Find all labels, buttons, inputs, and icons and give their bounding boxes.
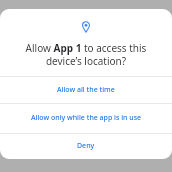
button[interactable]: Allow all the time	[0, 77, 172, 103]
button[interactable]: Deny	[0, 134, 172, 159]
staticText: Deny	[77, 141, 95, 151]
staticText: Allow App 1 to access this device’s loca…	[0, 41, 172, 68]
staticText: Allow all the time	[57, 85, 115, 95]
button[interactable]: Allow only while the app is in use	[0, 104, 172, 133]
staticText: Allow only while the app is in use	[31, 113, 142, 123]
